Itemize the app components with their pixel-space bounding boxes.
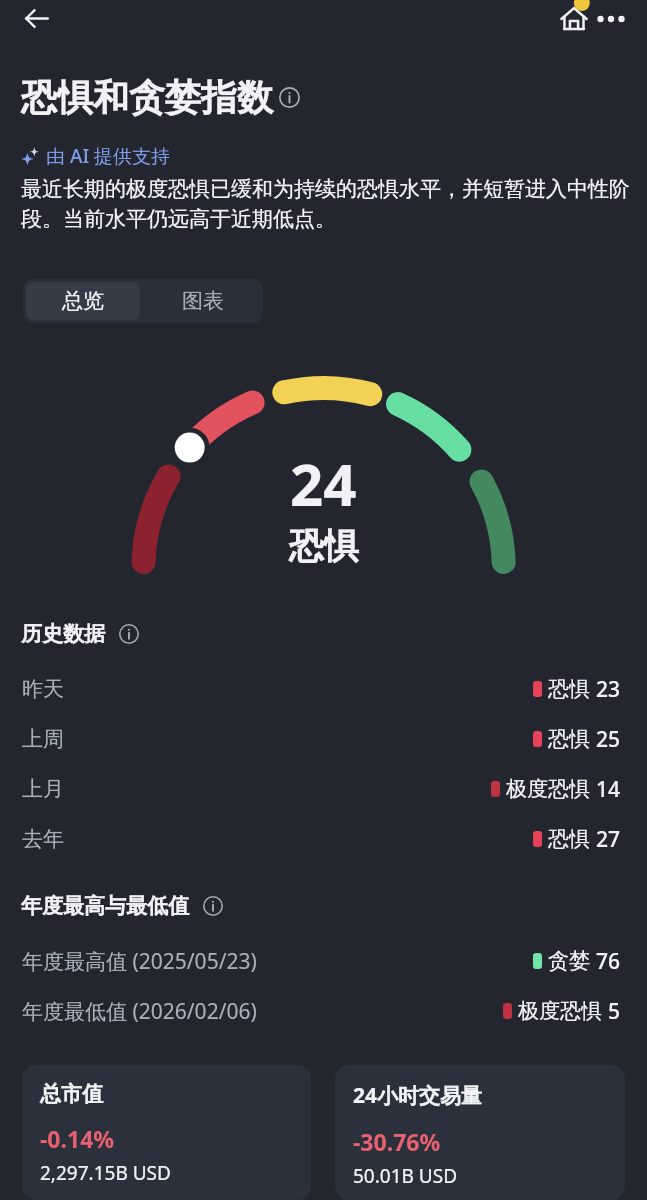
staticText: 上月 [22,776,64,802]
button[interactable]: More options [592,0,629,37]
staticText: 恐惧 [548,826,590,852]
staticText: -30.76% [353,1126,441,1157]
staticText: 27 [596,825,621,854]
staticText: 年度最高值 (2025/05/23) [22,947,257,976]
staticText: 50.01B USD [353,1163,458,1189]
button[interactable]: 24小时交易量 [335,1065,625,1200]
staticText: 由 AI 提供支持 [46,143,171,169]
button[interactable]: 总市值 [22,1065,311,1200]
staticText: 极度恐惧 [518,998,602,1024]
staticText: 去年 [22,826,64,852]
staticText: 图表 [182,288,224,314]
button[interactable]: Home [555,0,592,37]
staticText: 总市值 [40,1081,103,1107]
staticText: 25 [596,725,621,754]
button[interactable]: 上周 [0,716,647,762]
staticText: 年度最低值 (2026/02/06) [22,997,257,1026]
staticText: 76 [596,947,621,976]
button[interactable]: 昨天 [0,666,647,712]
staticText: 最近长期的极度恐惧已缓和为持续的恐惧水平，并短暂进入中性阶段。当前水平仍远高于近… [21,176,641,232]
staticText: 24小时交易量 [353,1081,483,1110]
staticText: 恐惧和贪婪指数 [21,75,273,120]
button[interactable]: 上月 [0,766,647,812]
button[interactable]: 去年 [0,816,647,862]
button[interactable]: 年度最低值 (2026/02/06) [0,988,647,1034]
staticText: 5 [608,997,621,1026]
staticText: 极度恐惧 [506,776,590,802]
staticText: 年度最高与最低值 [21,893,189,919]
staticText: 贪婪 [548,948,590,974]
staticText: 总览 [62,288,104,314]
button[interactable]: 图表 [143,279,263,323]
staticText: 上周 [22,726,64,752]
staticText: 恐惧 [548,726,590,752]
staticText: -0.14% [40,1123,115,1154]
button[interactable]: Back [18,0,55,37]
button[interactable]: 总览 [23,279,143,323]
staticText: 24 [290,444,357,523]
button[interactable]: 年度最高值 (2025/05/23) [0,938,647,984]
staticText: 昨天 [22,676,64,702]
staticText: 23 [596,675,621,704]
staticText: 恐惧 [548,676,590,702]
staticText: 14 [596,775,621,804]
staticText: 2,297.15B USD [40,1160,171,1186]
staticText: 历史数据 [21,621,105,647]
staticText: 恐惧 [289,524,359,568]
